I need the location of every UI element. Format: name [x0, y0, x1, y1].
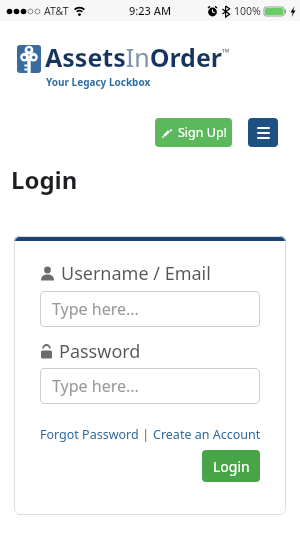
staticText: 9:23 AM: [129, 3, 172, 18]
staticText: Username / Email: [61, 261, 211, 286]
button[interactable]: Forgot Password: [40, 426, 139, 443]
staticText: Type here...: [52, 375, 139, 397]
button[interactable]: Type here...: [40, 291, 260, 327]
staticText: Login: [213, 457, 250, 476]
staticText: AT&T: [44, 4, 69, 18]
staticText: Login: [11, 163, 78, 196]
button[interactable]: Create an Account: [153, 426, 261, 443]
staticText: |: [139, 426, 153, 443]
staticText: Sign Up!: [178, 124, 227, 141]
staticText: 100%: [234, 4, 261, 18]
button[interactable]: Sign Up!: [155, 118, 232, 147]
staticText: AssetsInOrder™: [45, 40, 230, 74]
button[interactable]: Login: [202, 450, 260, 482]
staticText: Type here...: [52, 298, 139, 320]
staticText: Your Legacy Lockbox: [46, 75, 151, 89]
button[interactable]: [248, 118, 278, 147]
button[interactable]: Type here...: [40, 368, 260, 404]
staticText: Password: [59, 339, 141, 364]
